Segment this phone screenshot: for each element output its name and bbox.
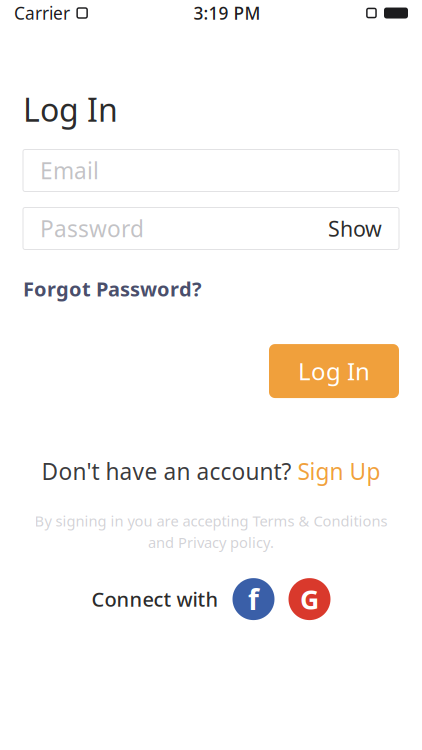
staticText: G — [300, 581, 319, 617]
staticText: Email — [40, 155, 99, 185]
button[interactable]: Email — [23, 149, 399, 191]
staticText: Don't have an account? — [41, 456, 291, 486]
staticText: By signing in you are accepting Terms & … — [34, 511, 387, 531]
staticText: Log In — [298, 355, 370, 387]
staticText: Forgot Password? — [23, 275, 202, 302]
button[interactable]: Password — [23, 207, 399, 249]
staticText: Sign Up — [297, 456, 380, 486]
staticText: f — [248, 580, 259, 618]
button[interactable]: Log In — [269, 344, 399, 398]
staticText: Password — [40, 213, 144, 243]
button[interactable]: Sign Up — [297, 456, 380, 486]
staticText: 3:19 PM — [194, 1, 261, 24]
staticText: Carrier — [14, 1, 70, 24]
staticText: Show — [328, 214, 382, 243]
staticText: Log In — [23, 88, 118, 130]
staticText: Connect with — [91, 586, 218, 612]
button[interactable]: Forgot Password? — [23, 269, 202, 308]
staticText: and Privacy policy. — [148, 533, 274, 552]
button[interactable]: Sign in with Google — [288, 578, 330, 620]
button[interactable]: Sign in with Facebook — [232, 578, 274, 620]
